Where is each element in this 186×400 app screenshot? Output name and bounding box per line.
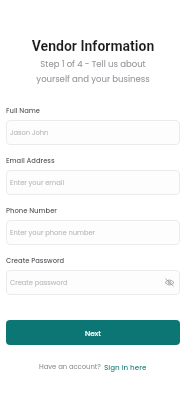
staticText: Jason John — [10, 128, 49, 137]
staticText: Enter your email — [10, 178, 65, 187]
button[interactable]: Sign in here — [104, 362, 147, 372]
staticText: Vendor Information — [6, 38, 180, 54]
staticText: Have an account? — [39, 362, 101, 372]
button[interactable]: Show password — [163, 276, 176, 289]
staticText: Enter your phone number — [10, 228, 96, 237]
staticText: Create Password — [6, 256, 65, 266]
staticText: Full Name — [6, 106, 41, 116]
staticText: Next — [85, 328, 102, 338]
staticText: Create password — [10, 278, 68, 287]
button[interactable]: Next — [6, 320, 180, 345]
button[interactable]: Create password — [6, 270, 180, 295]
staticText: Email Address — [6, 156, 55, 166]
button[interactable]: Enter your email — [6, 170, 180, 195]
button[interactable]: Jason John — [6, 120, 180, 145]
button[interactable]: Enter your phone number — [6, 220, 180, 245]
staticText: Phone Number — [6, 206, 57, 216]
staticText: Step 1 of 4 - Tell us about yourself and… — [6, 58, 180, 85]
